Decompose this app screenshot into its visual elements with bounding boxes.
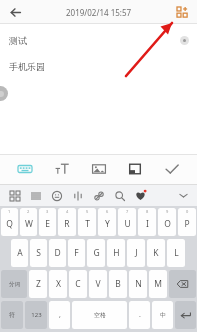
staticText: 0 <box>186 209 189 214</box>
button[interactable]: Done <box>158 155 186 183</box>
staticText: 测试 <box>9 35 27 46</box>
button[interactable]: A <box>11 239 28 267</box>
button[interactable]: 9 <box>158 208 176 236</box>
staticText: G <box>93 247 100 259</box>
staticText: E <box>45 218 50 230</box>
button[interactable]: Keyboard layout <box>25 185 46 206</box>
staticText: 6 <box>106 209 109 214</box>
button[interactable]: 符 <box>1 301 23 329</box>
button[interactable]: L <box>167 239 185 267</box>
staticText: 8 <box>146 209 149 214</box>
staticText: 1 <box>8 209 11 214</box>
staticText: Y <box>105 218 110 230</box>
button[interactable]: , <box>49 301 70 329</box>
button[interactable]: 1 <box>1 208 18 236</box>
staticText: 2 <box>27 209 30 214</box>
staticText: J <box>135 247 138 259</box>
staticText: P <box>184 218 190 230</box>
button[interactable]: Note <box>121 155 149 183</box>
staticText: H <box>113 247 120 259</box>
button[interactable]: 0 <box>178 208 196 236</box>
staticText: Z <box>36 278 41 290</box>
button[interactable]: . <box>129 301 150 329</box>
staticText: K <box>153 247 159 259</box>
staticText: V <box>95 278 101 290</box>
button[interactable]: H <box>107 239 125 267</box>
button[interactable]: 8 <box>138 208 156 236</box>
button[interactable]: 4 <box>58 208 76 236</box>
button[interactable]: 2 <box>20 208 37 236</box>
staticText: R <box>64 218 70 230</box>
staticText: U <box>124 218 131 230</box>
staticText: I <box>146 218 149 230</box>
staticText: B <box>115 278 121 290</box>
staticText: . <box>139 310 141 320</box>
button[interactable]: Keyboard <box>11 155 39 183</box>
staticText: , <box>59 310 61 320</box>
button[interactable]: Voice <box>67 185 88 206</box>
button[interactable]: 测试 <box>0 30 197 50</box>
staticText: Q <box>6 218 13 230</box>
button[interactable]: Back <box>4 1 26 23</box>
staticText: S <box>36 247 41 259</box>
button[interactable]: Text format <box>48 155 76 183</box>
staticText: F <box>74 247 79 259</box>
staticText: A <box>17 247 23 259</box>
button[interactable]: G <box>87 239 105 267</box>
staticText: M <box>154 278 162 290</box>
button[interactable]: Enter <box>175 301 196 329</box>
staticText: W <box>25 218 33 230</box>
button[interactable]: C <box>69 270 87 298</box>
button[interactable]: Favorites <box>130 185 150 205</box>
button[interactable]: Grid <box>4 185 25 206</box>
button[interactable]: F <box>68 239 85 267</box>
staticText: 3 <box>46 209 49 214</box>
button[interactable]: 6 <box>98 208 116 236</box>
staticText: N <box>135 278 142 290</box>
staticText: L <box>174 247 179 259</box>
button[interactable]: 中 <box>152 301 173 329</box>
button[interactable]: Backspace <box>169 270 196 298</box>
button[interactable]: Add widget <box>172 2 192 22</box>
button[interactable]: Insert image <box>85 155 113 183</box>
button[interactable]: Hide keyboard <box>173 185 193 205</box>
button[interactable]: M <box>149 270 167 298</box>
button[interactable]: 3 <box>39 208 56 236</box>
staticText: 4 <box>66 209 69 214</box>
button[interactable]: 7 <box>118 208 136 236</box>
button[interactable]: B <box>109 270 127 298</box>
staticText: C <box>75 278 81 290</box>
staticText: 7 <box>126 209 129 214</box>
button[interactable]: Search <box>109 185 130 206</box>
button[interactable]: K <box>147 239 165 267</box>
staticText: 2019/02/14 15:57 <box>66 7 132 18</box>
button[interactable]: 空格 <box>72 301 127 329</box>
staticText: 手机乐园 <box>9 61 45 72</box>
button[interactable]: D <box>49 239 66 267</box>
button[interactable]: 5 <box>78 208 96 236</box>
staticText: X <box>56 278 61 290</box>
staticText: 空格 <box>94 311 106 319</box>
button[interactable]: Clip <box>88 185 109 206</box>
button[interactable]: Z <box>29 270 47 298</box>
button[interactable]: J <box>127 239 145 267</box>
button[interactable]: 123 <box>25 301 47 329</box>
staticText: 中 <box>160 311 166 319</box>
staticText: 9 <box>166 209 169 214</box>
staticText: 5 <box>86 209 89 214</box>
button[interactable]: Emoji <box>46 185 67 206</box>
button[interactable]: X <box>49 270 67 298</box>
button[interactable]: 分词 <box>1 270 27 298</box>
staticText: 分词 <box>9 281 20 288</box>
staticText: 符 <box>9 311 15 319</box>
button[interactable]: V <box>89 270 107 298</box>
staticText: D <box>54 247 61 259</box>
button[interactable]: N <box>129 270 147 298</box>
staticText: T <box>85 218 90 230</box>
staticText: 123 <box>31 311 42 319</box>
staticText: O <box>164 218 171 230</box>
button[interactable]: S <box>30 239 47 267</box>
